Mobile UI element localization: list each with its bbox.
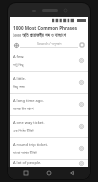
button[interactable]: A round trip ticket. [10, 138, 88, 160]
button[interactable]: Back [67, 168, 77, 178]
staticText: A lot of people. [13, 160, 42, 165]
button[interactable]: A little. [10, 72, 88, 94]
button[interactable]: A one way ticket. [10, 116, 88, 138]
staticText: A few. [13, 54, 25, 59]
staticText: অল্প কিছু [13, 62, 24, 67]
staticText: অনেক দিন আগে [13, 106, 34, 111]
staticText: A one way ticket. [13, 120, 45, 125]
staticText: 1000 Most Common Phrases [13, 25, 78, 31]
button[interactable]: Play pronunciation [77, 56, 86, 65]
button[interactable]: Play pronunciation [77, 160, 86, 167]
staticText: Search / অনুসন্ধান [37, 41, 62, 46]
staticText: A round trip ticket. [13, 142, 48, 147]
button[interactable]: Play pronunciation [77, 144, 86, 153]
staticText: এক পিঠের টিকিট [13, 128, 34, 133]
button[interactable]: A long time ago. [10, 94, 88, 116]
staticText: ১০০০ অতি প্রয়োজনীয় শব্দ ও বাক্যাংশ [13, 32, 66, 38]
button[interactable]: Voice search [78, 41, 86, 49]
button[interactable]: Play pronunciation [77, 122, 86, 131]
staticText: কিছু সময় [13, 84, 25, 89]
staticText: A little. [13, 76, 26, 81]
staticText: যাওয়া আসার টিকিট [13, 150, 37, 155]
button[interactable]: Play pronunciation [77, 100, 86, 109]
staticText: A long time ago. [13, 98, 44, 103]
button[interactable]: Menu [12, 41, 20, 49]
button[interactable]: A lot of people. [10, 160, 88, 167]
button[interactable]: Search / অনুসন্ধান [20, 39, 78, 50]
button[interactable]: Recents [21, 168, 31, 178]
button[interactable]: Home [44, 168, 54, 178]
button[interactable]: A few. [10, 50, 88, 72]
button[interactable]: Play pronunciation [77, 78, 86, 87]
